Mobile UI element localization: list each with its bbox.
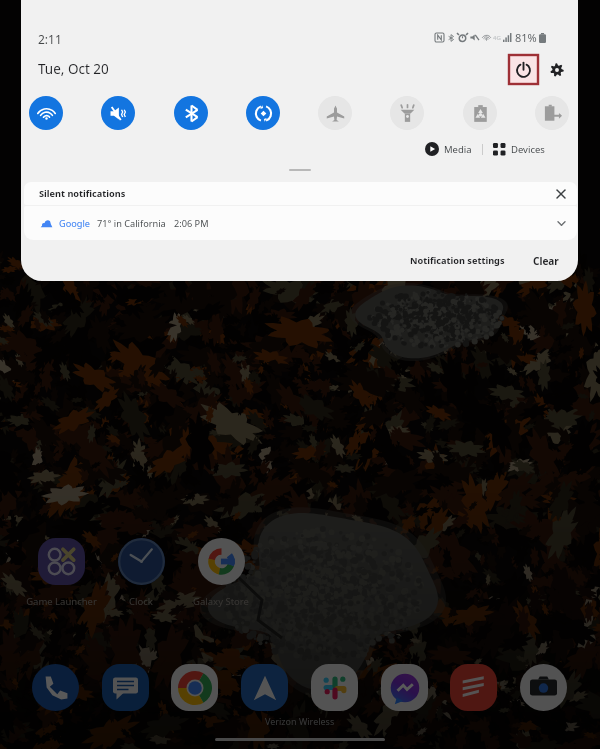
button[interactable]: Galaxy Store (175, 538, 267, 608)
button[interactable]: Google (24, 206, 577, 240)
button[interactable]: Clear (525, 248, 567, 274)
button[interactable]: Auto rotate (246, 96, 280, 130)
button[interactable]: Flashlight (390, 96, 424, 130)
button[interactable]: Mail (241, 664, 288, 711)
staticText: Google (59, 217, 91, 230)
staticText: Verizon Wireless (265, 715, 335, 727)
button[interactable]: Silent notifications (24, 182, 577, 205)
button[interactable]: Mobile data (535, 96, 569, 130)
button[interactable]: Airplane mode (318, 96, 352, 130)
button[interactable]: Settings (549, 62, 564, 77)
button[interactable]: Sound (101, 96, 135, 130)
button[interactable]: Chrome (171, 664, 218, 711)
button[interactable]: Notification settings (402, 248, 513, 273)
staticText: Tue, Oct 20 (38, 60, 109, 78)
button[interactable]: Slack (311, 664, 358, 711)
staticText: Game Launcher (26, 595, 97, 608)
staticText: 71° in California (97, 217, 166, 230)
staticText: Galaxy Store (193, 595, 249, 608)
staticText: 2:11 (38, 31, 62, 47)
button[interactable]: Game Launcher (15, 538, 107, 608)
button[interactable]: Devices (493, 143, 545, 156)
staticText: 2:06 PM (174, 217, 209, 230)
button[interactable]: Dismiss (553, 186, 569, 202)
button[interactable]: Power saving (463, 96, 497, 130)
button[interactable]: Bluetooth (174, 96, 208, 130)
button[interactable]: Messenger (381, 664, 428, 711)
button[interactable]: Media (425, 142, 472, 156)
staticText: Media (444, 143, 472, 156)
button[interactable]: Phone (32, 664, 79, 711)
staticText: Notification settings (410, 254, 505, 267)
button[interactable]: Todoist (450, 664, 497, 711)
staticText: Devices (511, 143, 545, 156)
button[interactable]: Wi-Fi (29, 96, 63, 130)
staticText: Clear (533, 254, 559, 268)
button[interactable]: Messages (102, 664, 149, 711)
button[interactable]: Camera (520, 664, 567, 711)
button[interactable]: Power (509, 55, 538, 84)
staticText: Clock (129, 595, 153, 608)
staticText: 4G (493, 34, 501, 42)
staticText: Silent notifications (39, 187, 126, 200)
button[interactable]: Clock (95, 538, 187, 608)
button[interactable]: Expand (553, 215, 569, 231)
staticText: 81% (515, 30, 537, 45)
